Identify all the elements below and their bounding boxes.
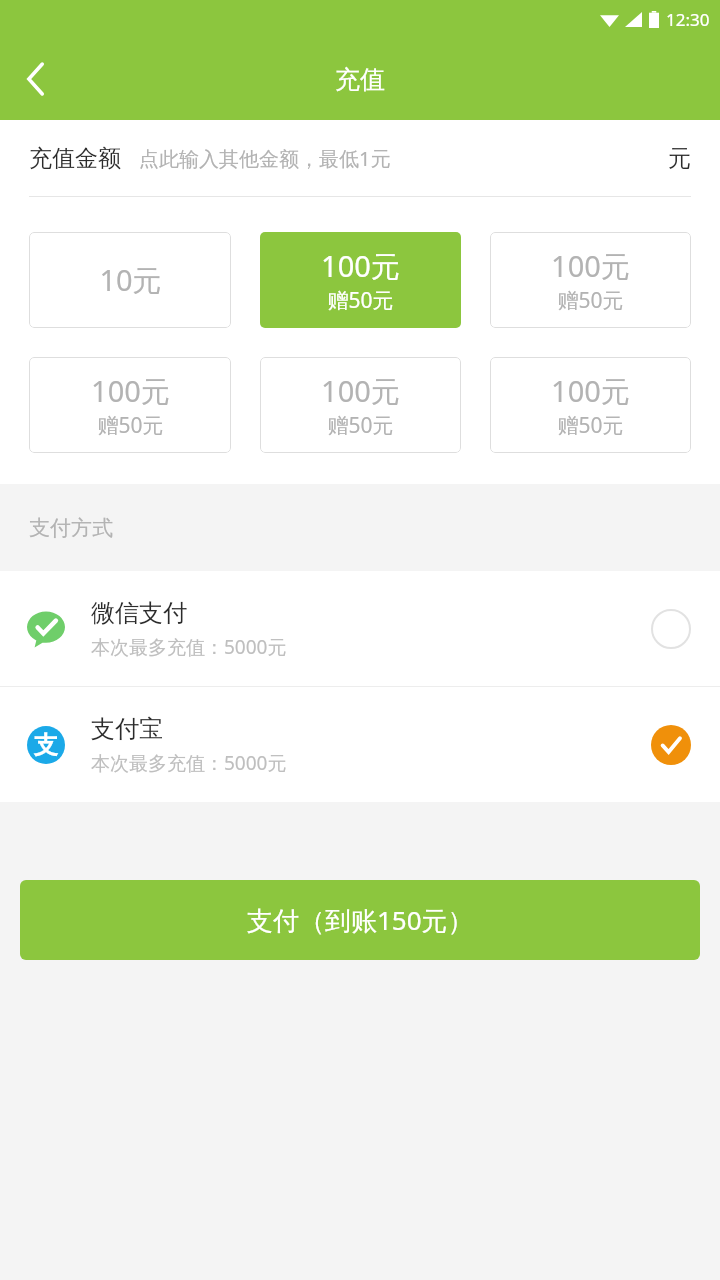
staticText: 赠50元 <box>327 411 394 440</box>
staticText: 赠50元 <box>327 286 394 315</box>
staticText: 赠50元 <box>557 411 624 440</box>
button[interactable]: Back <box>8 51 64 107</box>
button[interactable]: 100元 <box>490 357 691 453</box>
staticText: 100元 <box>551 246 630 286</box>
staticText: 支付（到账150元） <box>247 902 474 938</box>
staticText: 100元 <box>321 246 400 286</box>
staticText: 赠50元 <box>97 411 164 440</box>
button[interactable]: 100元 <box>29 357 231 453</box>
button[interactable]: 100元 <box>260 232 461 328</box>
staticText: 支 <box>34 730 58 760</box>
button[interactable]: 10元 <box>29 232 231 328</box>
staticText: 本次最多充值：5000元 <box>91 750 287 776</box>
staticText: 100元 <box>551 371 630 411</box>
staticText: 100元 <box>91 371 170 411</box>
staticText: 赠50元 <box>557 286 624 315</box>
staticText: 元 <box>668 144 691 173</box>
staticText: 微信支付 <box>91 598 187 628</box>
staticText: 10元 <box>99 260 162 300</box>
button[interactable]: 充值金额 <box>29 120 691 196</box>
button[interactable]: 微信支付 <box>0 571 720 686</box>
button[interactable]: 100元 <box>490 232 691 328</box>
button[interactable]: 100元 <box>260 357 461 453</box>
staticText: 100元 <box>321 371 400 411</box>
staticText: 充值金额 <box>29 144 121 173</box>
staticText: 12:30 <box>666 8 710 31</box>
staticText: 充值 <box>335 64 385 95</box>
staticText: 支付宝 <box>91 714 163 744</box>
staticText: 支付方式 <box>29 515 113 541</box>
staticText: 本次最多充值：5000元 <box>91 634 287 660</box>
button[interactable]: 支付（到账150元） <box>20 880 700 960</box>
button[interactable]: 支 <box>0 687 720 802</box>
staticText: 点此输入其他金额，最低1元 <box>139 145 391 172</box>
